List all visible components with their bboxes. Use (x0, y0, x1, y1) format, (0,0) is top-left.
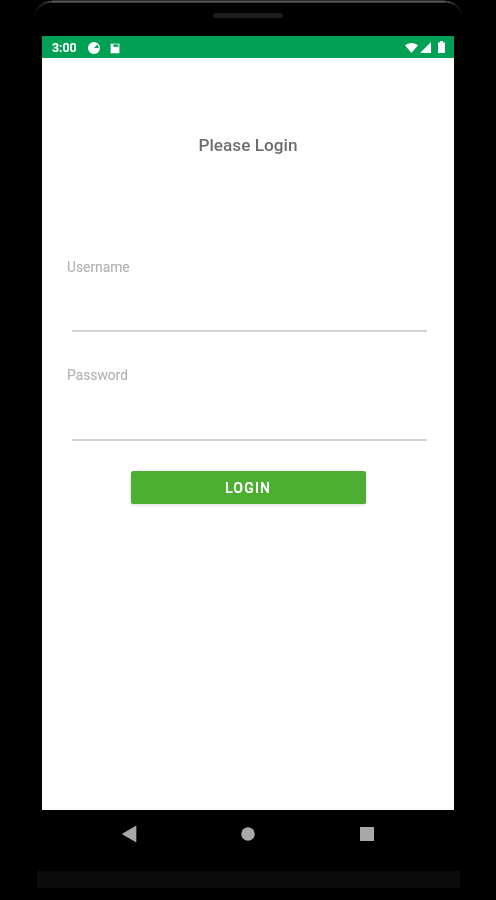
button[interactable]: Username (67, 250, 431, 332)
staticText: Password (67, 367, 128, 383)
staticText: Username (67, 259, 130, 275)
button[interactable]: Recent apps (343, 810, 391, 858)
button[interactable]: LOGIN (131, 471, 366, 504)
button[interactable]: Password (67, 358, 431, 440)
button[interactable]: Home (224, 810, 272, 858)
staticText: 3:00 (52, 40, 77, 55)
button[interactable]: Back (105, 810, 153, 858)
staticText: Please Login (42, 135, 454, 155)
staticText: LOGIN (225, 480, 272, 496)
